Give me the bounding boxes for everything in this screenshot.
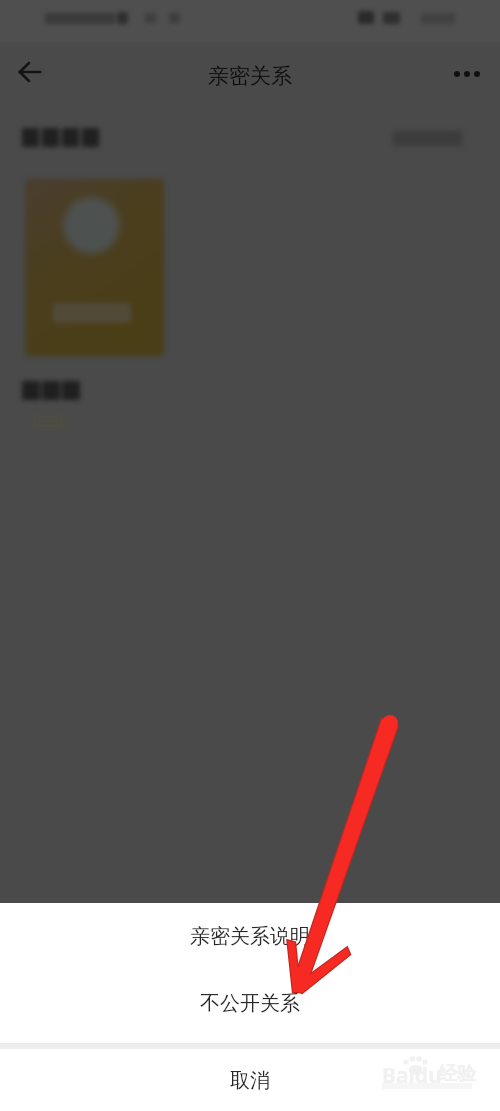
staticText: Baidu	[382, 1061, 442, 1090]
staticText: 不公开关系	[200, 991, 300, 1016]
button[interactable]	[25, 179, 164, 356]
staticText: 经验	[438, 1062, 476, 1086]
button[interactable]: 取消	[0, 1049, 500, 1111]
staticText: 亲密关系说明	[190, 924, 310, 949]
button[interactable]: Back	[9, 51, 51, 93]
button[interactable]: 不公开关系	[0, 968, 500, 1043]
staticText: 亲密关系	[208, 63, 292, 89]
button[interactable]: 亲密关系说明	[0, 903, 500, 968]
button[interactable]: More options	[444, 51, 490, 97]
staticText: 取消	[230, 1068, 270, 1093]
